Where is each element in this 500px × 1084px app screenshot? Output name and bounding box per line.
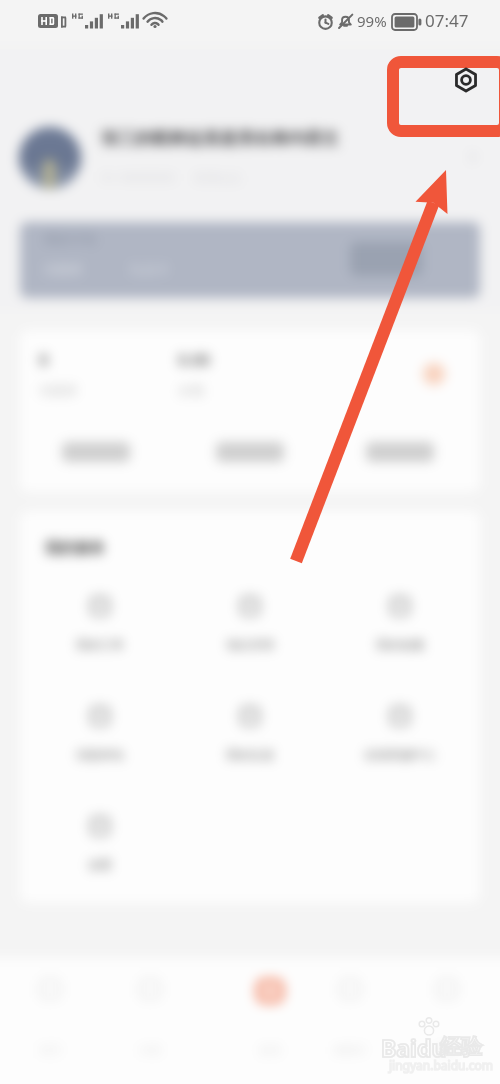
staticText: jingyan.baidu.com <box>389 1057 493 1073</box>
button[interactable]: 设置 <box>45 815 155 872</box>
button[interactable] <box>19 127 81 189</box>
button[interactable]: 发现 <box>230 975 310 1057</box>
button[interactable] <box>423 363 445 385</box>
button[interactable]: 优惠券包 <box>45 705 155 762</box>
staticText: 经验 <box>440 1034 482 1060</box>
staticText: 张三的昵称这里是用名称内容文 <box>101 128 339 149</box>
staticText: 99% <box>357 11 387 31</box>
button[interactable]: 0.00 <box>178 349 210 398</box>
staticText: 0.00 <box>178 349 210 371</box>
staticText: 我的 <box>436 1043 458 1057</box>
button[interactable]: 我的足迹 <box>195 705 305 762</box>
staticText: 我的足迹 <box>226 747 274 762</box>
staticText: 设置 <box>88 857 112 872</box>
staticText: 我的收藏 <box>376 637 424 652</box>
button[interactable]: 张三的昵称这里是用名称内容文 <box>101 128 339 149</box>
button[interactable]: 我的收藏 <box>345 595 455 652</box>
staticText: 07:47 <box>425 9 469 32</box>
staticText: 0 <box>39 349 49 371</box>
staticText: Baidu <box>381 1032 447 1063</box>
button[interactable]: 0 <box>39 349 78 398</box>
button[interactable]: 我的卡包 <box>20 222 480 298</box>
button[interactable]: 我的订单 <box>45 595 155 652</box>
button[interactable]: Settings <box>452 66 480 94</box>
button[interactable] <box>366 442 434 462</box>
staticText: 地址管理 <box>226 637 274 652</box>
staticText: 在线客服中心 <box>364 747 436 762</box>
button[interactable] <box>62 442 130 462</box>
button[interactable] <box>216 442 284 462</box>
staticText: 优惠券包 <box>76 747 124 762</box>
button[interactable]: 我的 <box>407 975 487 1057</box>
button[interactable]: 地址管理 <box>195 595 305 652</box>
staticText: 我的订单 <box>76 637 124 652</box>
staticText: 我的服务 <box>45 539 105 558</box>
button[interactable]: 在线客服中心 <box>345 705 455 762</box>
